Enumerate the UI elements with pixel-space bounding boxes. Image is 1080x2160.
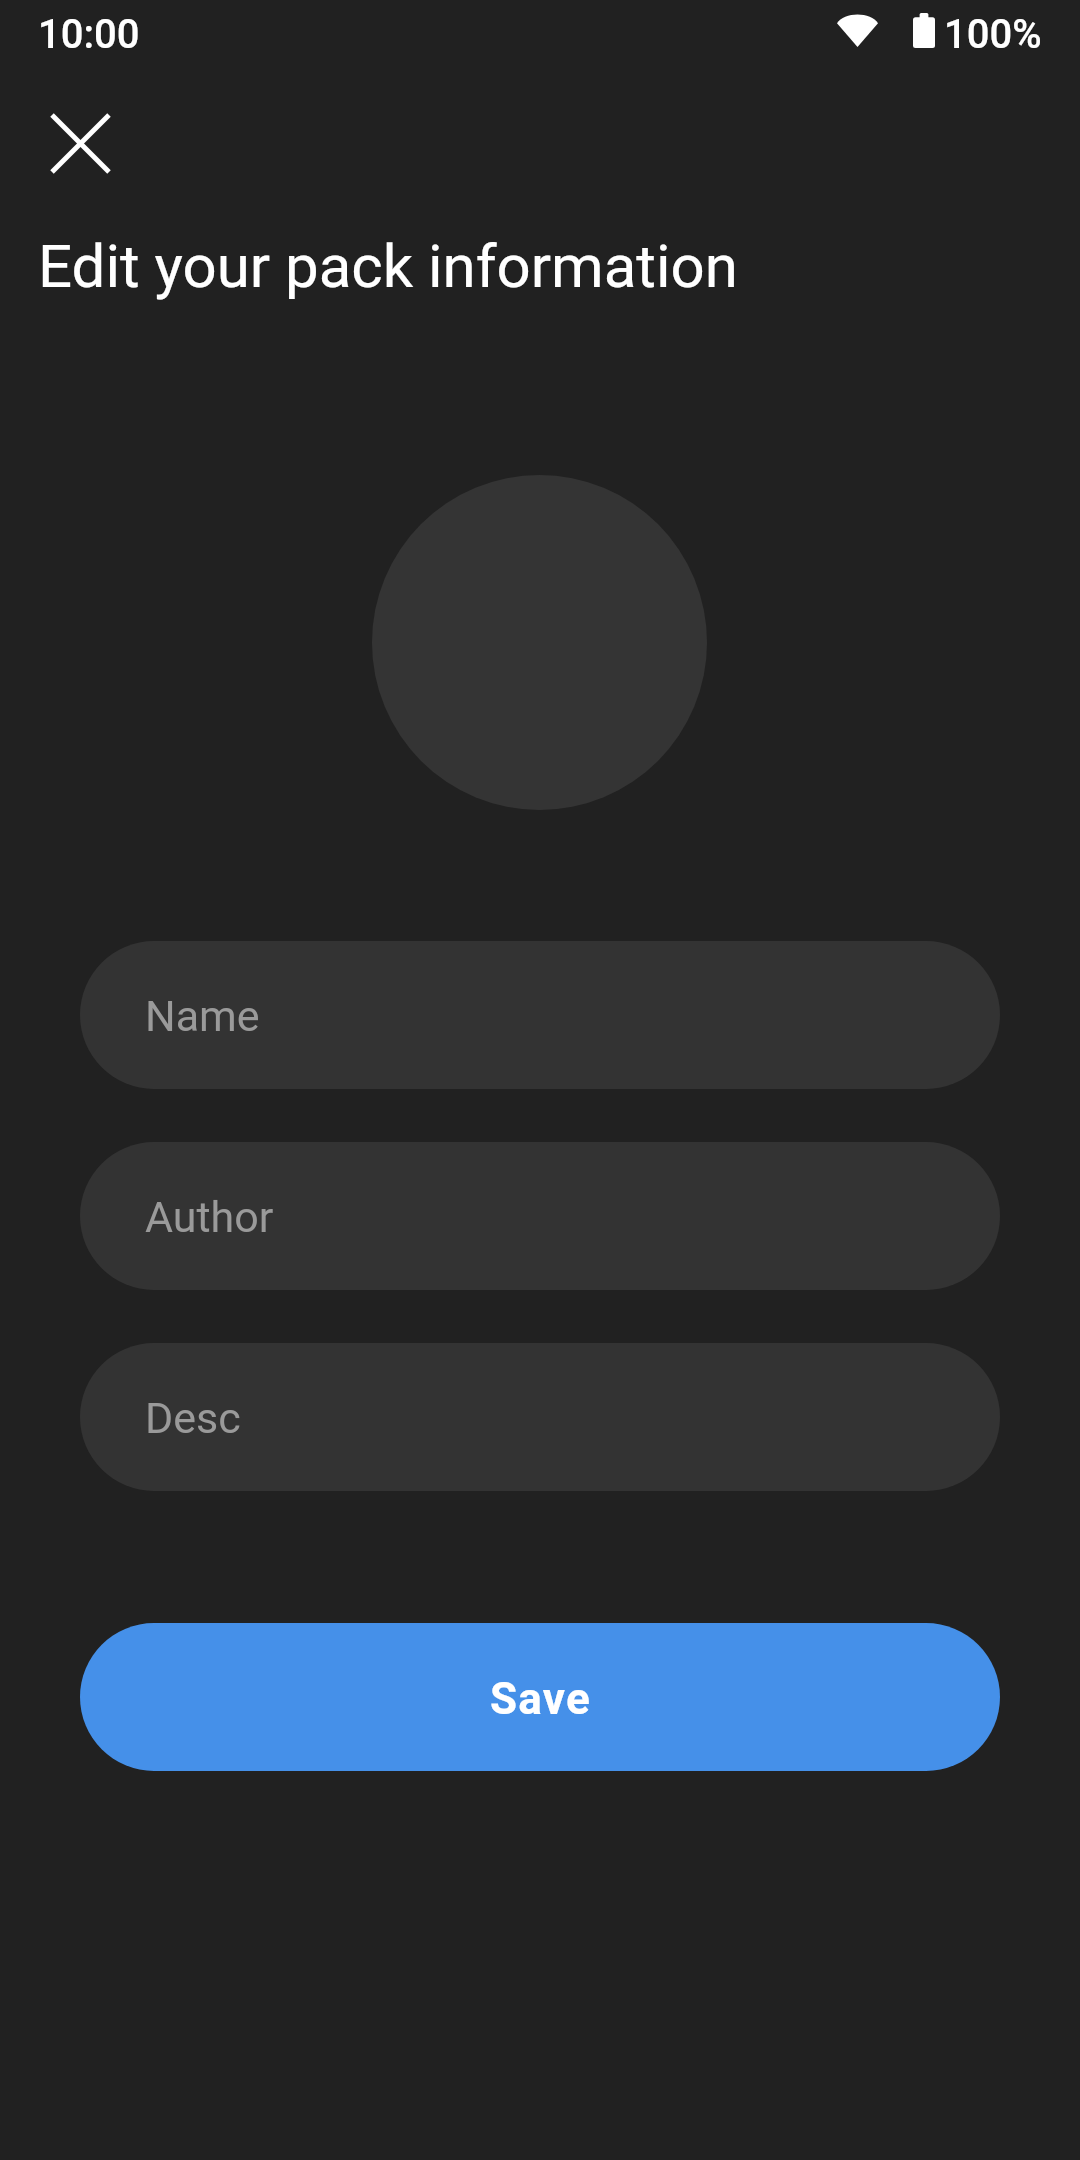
button[interactable]: Save [80, 1623, 1000, 1771]
button[interactable]: Choose pack image [372, 475, 707, 810]
other: Wi-Fi [837, 13, 878, 47]
button[interactable]: Close [31, 94, 130, 193]
staticText: Desc [145, 1393, 241, 1443]
staticText: Author [145, 1192, 274, 1242]
staticText: Edit your pack information [38, 231, 738, 301]
staticText: Save [490, 1673, 591, 1725]
other: Battery full [913, 13, 935, 48]
button[interactable]: Author [80, 1142, 1000, 1290]
button[interactable]: Desc [80, 1343, 1000, 1491]
staticText: Name [145, 991, 260, 1041]
staticText: 10:00 [38, 11, 140, 58]
button[interactable]: Name [80, 941, 1000, 1089]
staticText: 100% [944, 11, 1042, 58]
